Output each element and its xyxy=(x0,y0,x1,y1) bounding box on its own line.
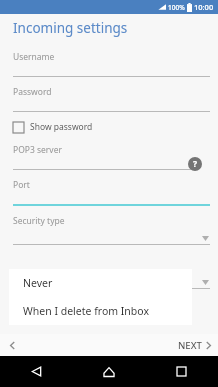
button[interactable]: Back xyxy=(0,356,72,387)
button[interactable]: Back xyxy=(4,337,20,353)
button[interactable] xyxy=(0,261,218,289)
button[interactable]: POP3 server xyxy=(0,144,218,170)
button[interactable]: Help xyxy=(188,157,202,171)
staticText: Username xyxy=(13,51,55,63)
staticText: NEXT xyxy=(178,339,202,352)
staticText: Port xyxy=(13,179,30,191)
button[interactable]: NEXT xyxy=(178,339,212,352)
button[interactable]: Port xyxy=(0,179,218,206)
button[interactable]: Security type xyxy=(0,215,218,245)
staticText: Password xyxy=(13,86,52,98)
button[interactable]: Never xyxy=(9,269,192,297)
staticText: When I delete from Inbox xyxy=(23,304,149,318)
staticText: 100% xyxy=(168,3,185,12)
staticText: Never xyxy=(23,276,53,290)
staticText: Incoming settings xyxy=(13,19,128,37)
button[interactable]: Recents xyxy=(145,356,218,387)
button[interactable]: Home xyxy=(72,356,145,387)
staticText: Security type xyxy=(13,215,65,227)
button[interactable]: Password xyxy=(0,86,218,112)
staticText: POP3 server xyxy=(13,144,62,156)
staticText: Show password xyxy=(30,121,93,133)
staticText: 10:00 xyxy=(194,2,214,12)
staticText: ? xyxy=(193,158,198,170)
button[interactable]: Show password xyxy=(13,121,93,133)
button[interactable]: When I delete from Inbox xyxy=(9,297,192,325)
button[interactable]: Username xyxy=(0,51,218,77)
